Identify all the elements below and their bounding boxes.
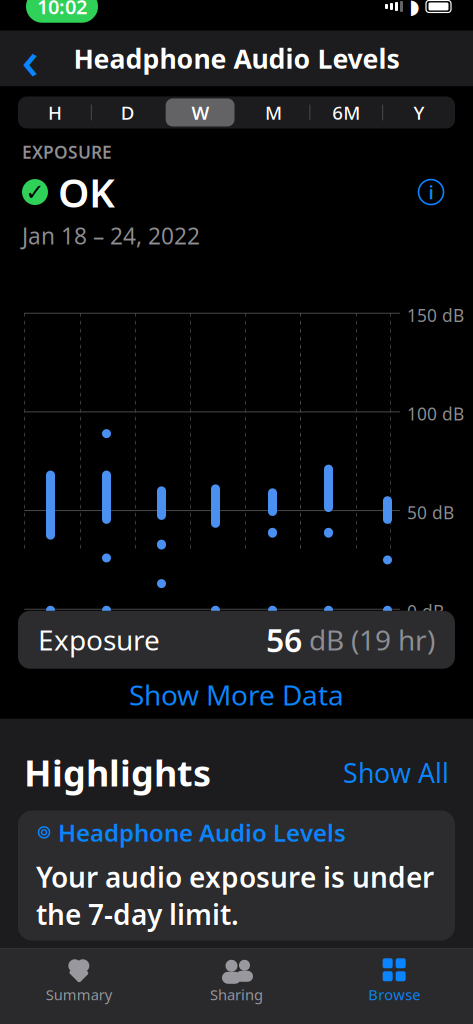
staticText: Your audio exposure is under the 7-day l… bbox=[36, 858, 434, 933]
staticText: Sharing bbox=[210, 985, 263, 1004]
button[interactable]: Back bbox=[8, 36, 52, 80]
staticText: ‹ bbox=[21, 23, 38, 94]
button[interactable]: Browse bbox=[315, 955, 473, 1007]
staticText: Show All bbox=[343, 755, 449, 790]
button[interactable]: About headphone audio levels bbox=[411, 172, 451, 212]
staticText: H bbox=[48, 100, 62, 125]
staticText: Summary bbox=[46, 985, 112, 1004]
staticText: M bbox=[265, 100, 282, 125]
button[interactable]: D bbox=[91, 96, 164, 128]
staticText: 150 dB bbox=[407, 304, 464, 327]
staticText: 0 dB bbox=[407, 600, 444, 623]
staticText: EXPOSURE bbox=[22, 140, 112, 163]
staticText: Sat bbox=[246, 615, 272, 638]
staticText: W bbox=[192, 100, 210, 125]
staticText: ✓ bbox=[25, 179, 44, 205]
button[interactable]: Show All bbox=[343, 755, 449, 790]
button[interactable]: W bbox=[164, 96, 236, 128]
staticText: 100 dB bbox=[407, 402, 464, 425]
staticText: Tue bbox=[24, 615, 54, 638]
staticText: 6M bbox=[332, 100, 360, 125]
button[interactable]: Y bbox=[382, 96, 455, 128]
button[interactable]: Headphone Audio Levels bbox=[18, 810, 455, 940]
staticText: dB (19 hr) bbox=[302, 621, 435, 658]
staticText: D bbox=[121, 100, 135, 125]
button[interactable]: H bbox=[18, 96, 91, 128]
staticText: 56 bbox=[266, 618, 302, 661]
button[interactable]: Exposure bbox=[18, 611, 455, 669]
staticText: Sun bbox=[302, 615, 334, 638]
button[interactable]: Sharing bbox=[158, 955, 315, 1007]
staticText: Show More Data bbox=[129, 676, 344, 713]
staticText: Mon bbox=[361, 615, 398, 638]
staticText: Thu bbox=[135, 615, 167, 638]
staticText: Jan 18 – 24, 2022 bbox=[22, 221, 200, 251]
staticText: OK bbox=[58, 165, 115, 219]
staticText: i bbox=[428, 180, 433, 204]
staticText: Exposure bbox=[38, 621, 160, 658]
staticText: Headphone Audio Levels bbox=[58, 816, 346, 848]
staticText: Wed bbox=[80, 615, 117, 638]
staticText: Y bbox=[414, 100, 425, 125]
staticText: Headphone Audio Levels bbox=[73, 41, 399, 76]
button[interactable]: Show More Data bbox=[18, 671, 455, 719]
staticText: 50 dB bbox=[407, 501, 454, 524]
staticText: 10:02 bbox=[37, 0, 87, 20]
button[interactable]: M bbox=[236, 96, 309, 128]
staticText: ◗ bbox=[409, 0, 420, 18]
button[interactable]: 6M bbox=[309, 96, 382, 128]
staticText: Browse bbox=[368, 985, 420, 1004]
button[interactable]: Summary bbox=[0, 955, 158, 1007]
staticText: Highlights bbox=[24, 749, 211, 796]
